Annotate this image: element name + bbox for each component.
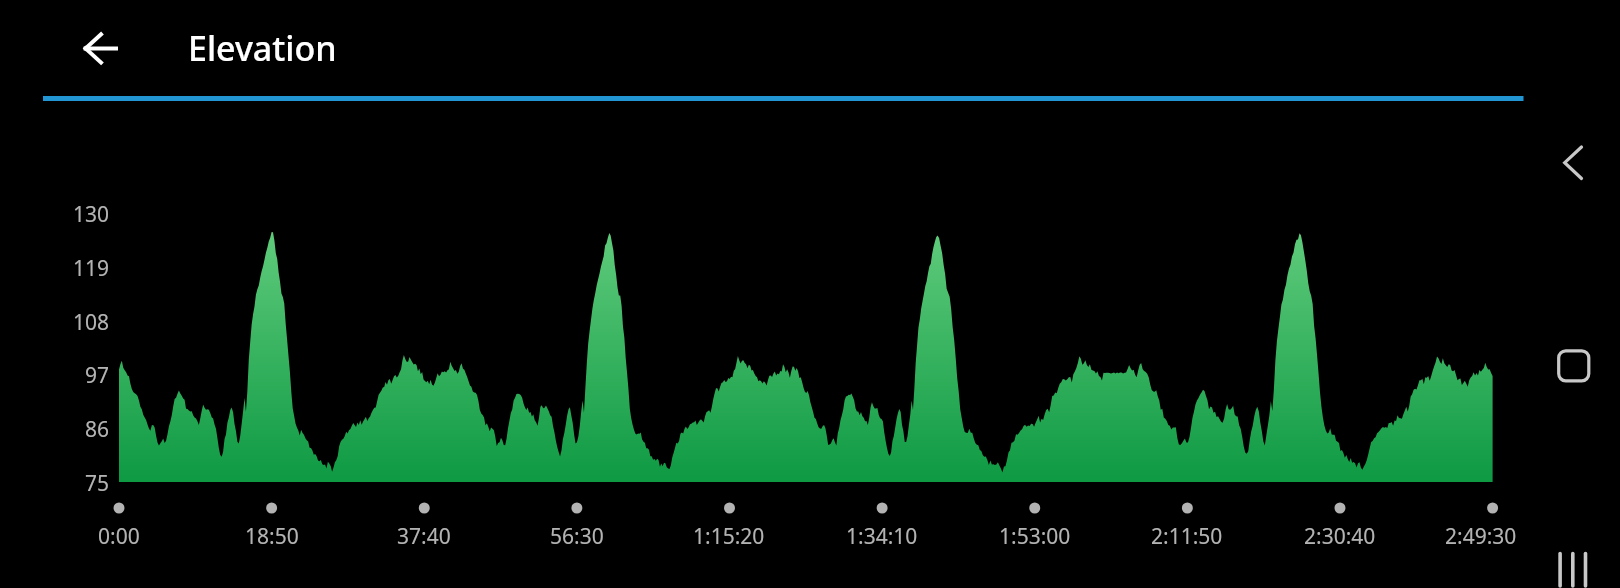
button[interactable]: Back [72,24,120,72]
staticText: 1:15:20 [693,522,765,551]
staticText: 1:53:00 [999,522,1071,551]
staticText: 119 [73,254,110,283]
button[interactable]: Recent apps [1538,540,1598,588]
staticText: 130 [73,200,110,229]
staticText: 56:30 [550,522,604,551]
staticText: Elevation [188,25,337,71]
staticText: 75 [85,469,110,498]
staticText: 97 [85,361,110,390]
staticText: 2:30:40 [1304,522,1376,551]
staticText: 2:49:30 [1445,522,1517,551]
staticText: 2:11:50 [1151,522,1223,551]
staticText: 1:34:10 [846,522,918,551]
staticText: 108 [73,308,110,337]
button[interactable]: Back [1538,132,1598,192]
staticText: 0:00 [98,522,140,551]
staticText: 86 [85,415,110,444]
button[interactable]: Home [1538,332,1598,392]
staticText: 18:50 [245,522,299,551]
staticText: 37:40 [397,522,451,551]
